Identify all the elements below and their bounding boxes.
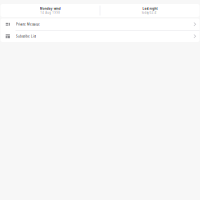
staticText: Monday wind (40, 6, 61, 10)
staticText: 14 Aug 1998 (40, 11, 60, 14)
button[interactable]: Subscribe List (0, 30, 199, 42)
staticText: Last night (142, 6, 157, 10)
staticText: Today 02:41 (141, 11, 158, 14)
button[interactable]: Private Message (0, 18, 199, 30)
staticText: Private Message (16, 22, 40, 26)
button[interactable]: Monday wind (0, 6, 100, 14)
button[interactable]: Last night (100, 6, 199, 14)
staticText: Subscribe List (16, 34, 36, 38)
